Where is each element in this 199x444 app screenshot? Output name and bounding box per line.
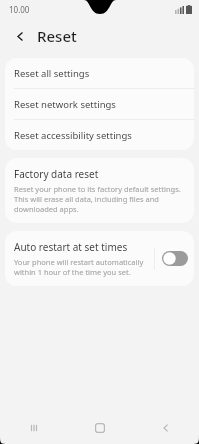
staticText: Reset accessibility settings xyxy=(14,129,132,142)
button[interactable]: Auto restart at set times xyxy=(5,231,194,286)
staticText: Auto restart at set times xyxy=(14,240,128,254)
staticText: Your phone will restart automatically wi… xyxy=(14,257,148,277)
button[interactable]: Back xyxy=(133,412,199,444)
button[interactable]: Home xyxy=(67,412,133,444)
staticText: Reset xyxy=(37,26,77,46)
staticText: Reset your phone to its factory default … xyxy=(14,184,185,214)
staticText: 10.00 xyxy=(9,4,30,15)
staticText: Reset network settings xyxy=(14,98,116,111)
button[interactable]: Factory data reset xyxy=(5,158,194,223)
button[interactable]: Reset all settings xyxy=(5,58,194,88)
button[interactable]: Back xyxy=(9,25,31,47)
button[interactable]: Reset network settings xyxy=(5,89,194,119)
staticText: Factory data reset xyxy=(14,167,99,181)
button[interactable]: Auto restart at set times toggle xyxy=(162,251,188,266)
staticText: Reset all settings xyxy=(14,67,90,80)
button[interactable]: Reset accessibility settings xyxy=(5,120,194,150)
button[interactable]: Recents xyxy=(0,412,67,444)
